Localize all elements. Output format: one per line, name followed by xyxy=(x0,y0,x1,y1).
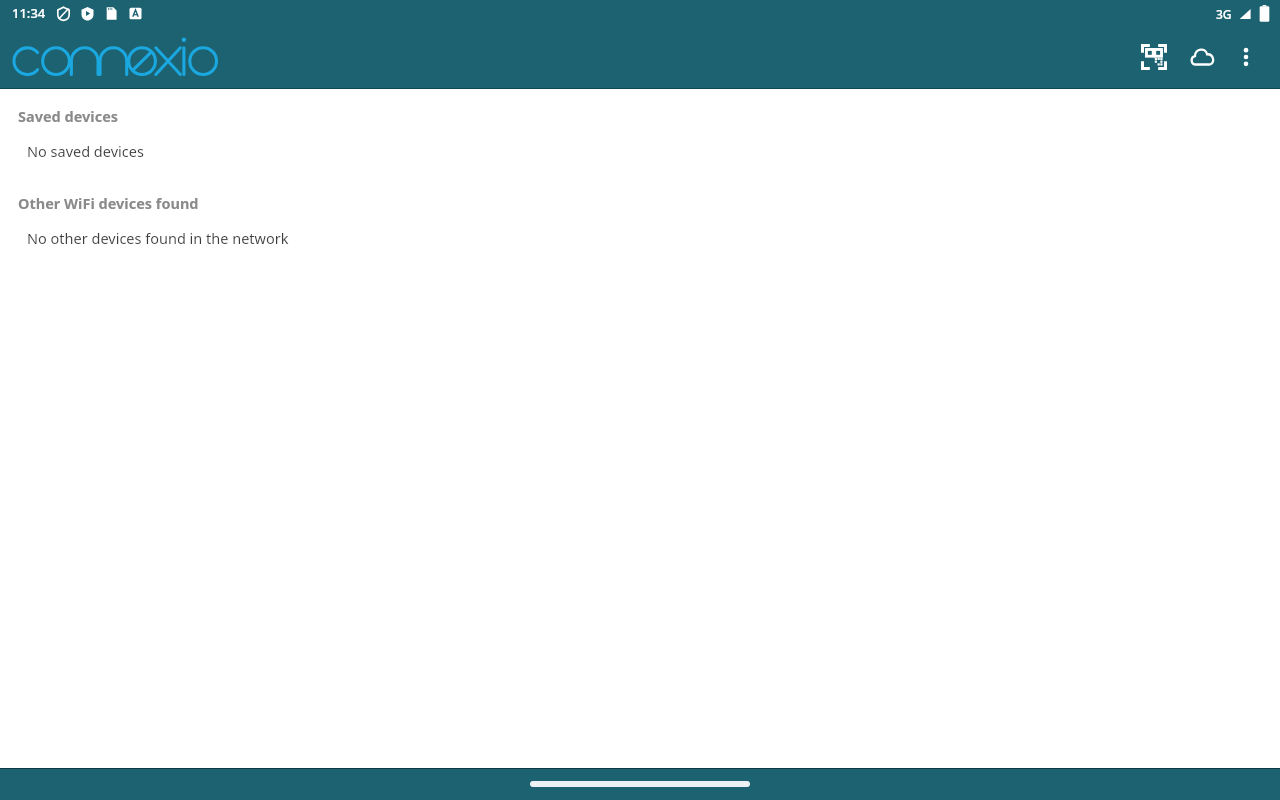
staticText: 3G xyxy=(1216,6,1232,22)
staticText: No other devices found in the network xyxy=(27,228,289,248)
button[interactable]: Cloud xyxy=(1180,35,1224,79)
staticText: 11:34 xyxy=(12,4,46,22)
staticText: No saved devices xyxy=(27,141,144,161)
button[interactable]: No other devices found in the network xyxy=(0,226,1280,250)
button[interactable]: Home gesture xyxy=(530,781,750,787)
button[interactable]: Scan QR code xyxy=(1132,35,1176,79)
staticText: Saved devices xyxy=(18,106,119,126)
button[interactable]: More options xyxy=(1226,37,1266,77)
staticText: Other WiFi devices found xyxy=(18,193,199,213)
button[interactable]: No saved devices xyxy=(0,139,1280,163)
